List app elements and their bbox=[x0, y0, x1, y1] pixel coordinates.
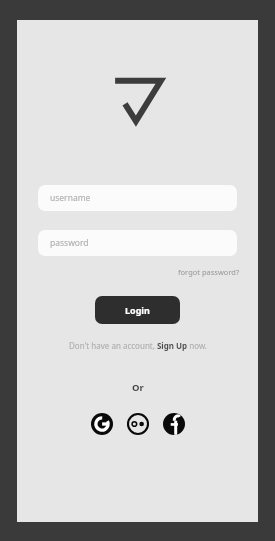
button[interactable]: username bbox=[38, 185, 237, 211]
staticText: Login bbox=[125, 304, 150, 316]
staticText: Don't have an account, Sign Up now. bbox=[69, 340, 207, 351]
button[interactable]: Don't have an account, Sign Up now. bbox=[66, 338, 210, 353]
button[interactable]: Login bbox=[95, 296, 180, 324]
button[interactable]: password bbox=[38, 230, 237, 256]
button[interactable]: Sign in with Facebook bbox=[161, 411, 186, 436]
staticText: forgot password? bbox=[178, 267, 240, 277]
staticText: password bbox=[50, 237, 89, 249]
button[interactable]: Sign in with Google bbox=[89, 411, 114, 436]
staticText: username bbox=[50, 192, 91, 204]
button[interactable]: forgot password? bbox=[176, 265, 242, 279]
button[interactable]: Sign in with Flickr bbox=[125, 411, 150, 436]
staticText: Or bbox=[132, 381, 144, 394]
